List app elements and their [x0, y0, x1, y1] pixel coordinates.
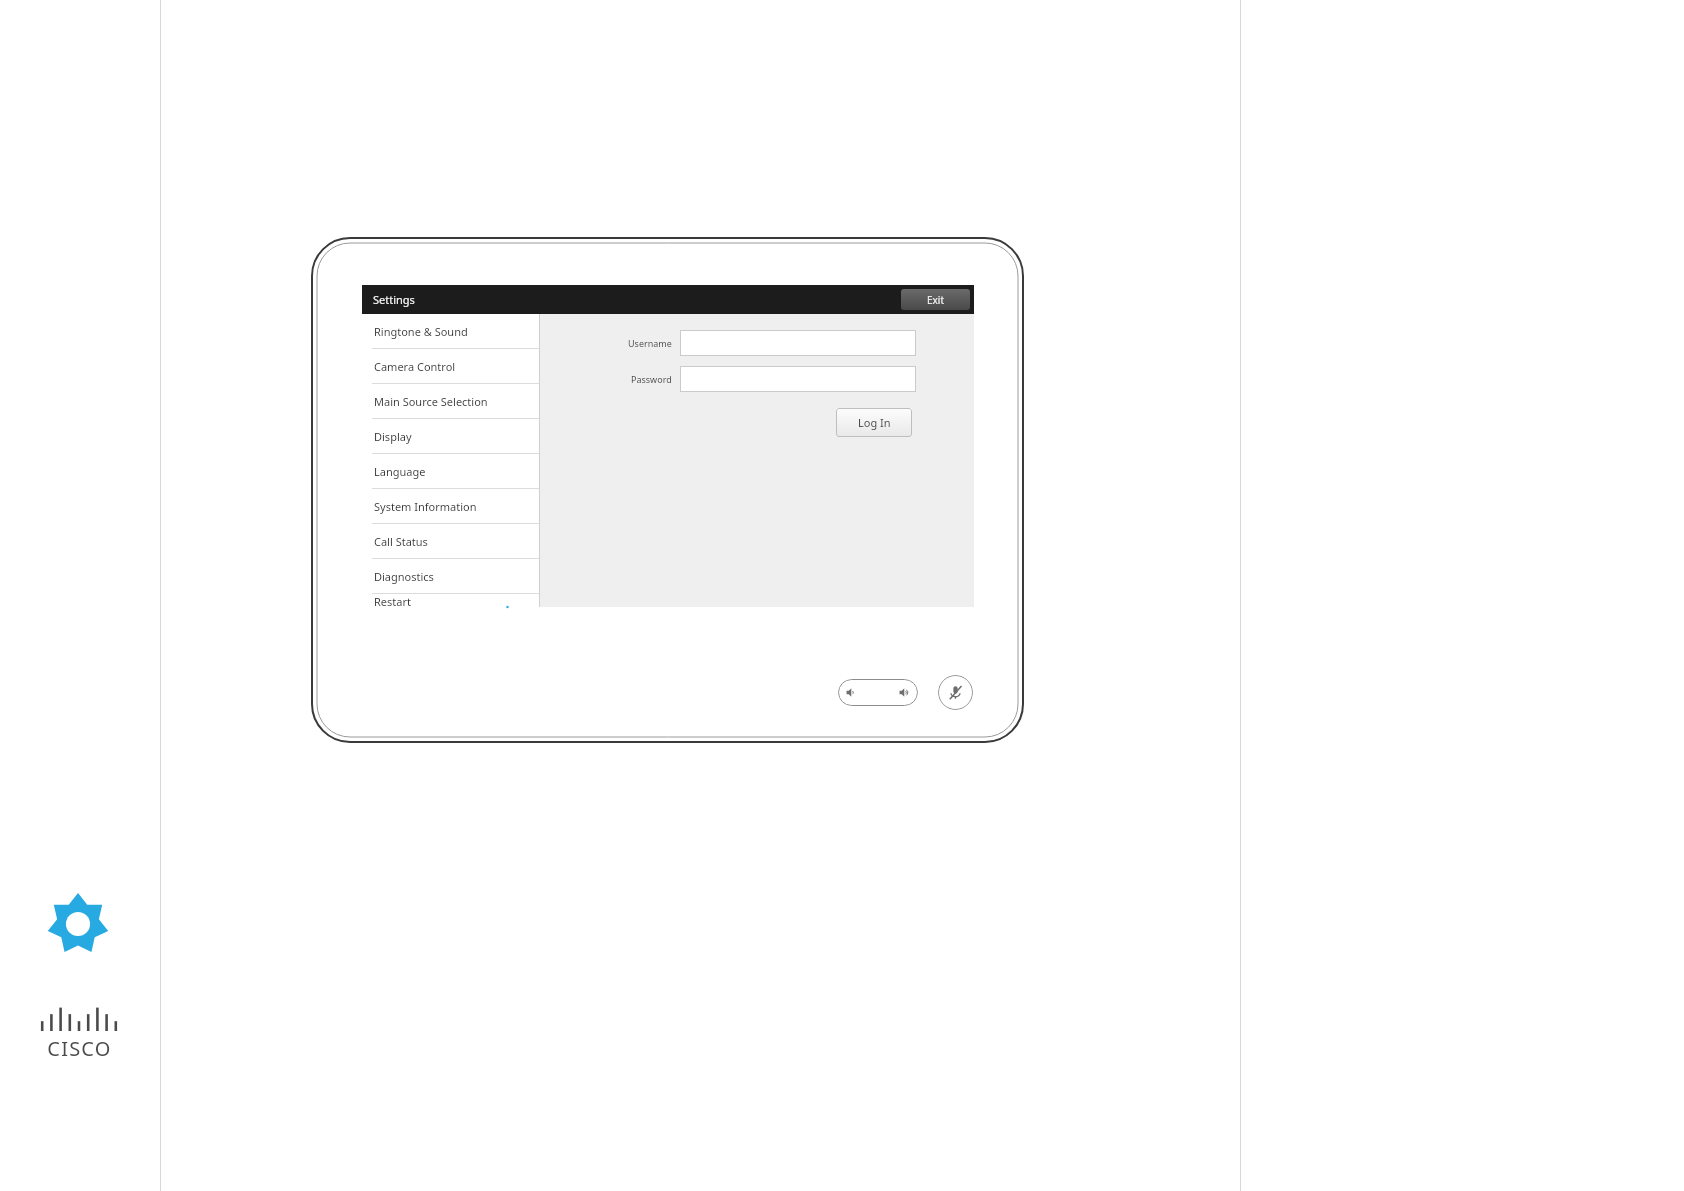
- staticText: Exit: [927, 293, 945, 307]
- button[interactable]: Display: [362, 419, 539, 454]
- button[interactable]: [680, 366, 916, 392]
- staticText: Main Source Selection: [374, 394, 488, 409]
- other: Cisco: [33, 1005, 125, 1031]
- staticText: System Information: [374, 499, 477, 514]
- button[interactable]: Log In: [836, 408, 912, 437]
- button[interactable]: Exit: [901, 289, 970, 310]
- button[interactable]: Ringtone & Sound: [362, 314, 539, 349]
- other: Settings: [47, 893, 109, 955]
- staticText: Diagnostics: [374, 569, 434, 584]
- staticText: Password: [631, 373, 672, 385]
- button[interactable]: Language: [362, 454, 539, 489]
- button[interactable]: [680, 330, 916, 356]
- button[interactable]: Main Source Selection: [362, 384, 539, 419]
- staticText: Log In: [858, 415, 891, 430]
- button[interactable]: System Information: [362, 489, 539, 524]
- staticText: Language: [374, 464, 426, 479]
- staticText: Restart: [374, 594, 411, 607]
- staticText: Ringtone & Sound: [374, 324, 468, 339]
- button[interactable]: Restart: [362, 594, 539, 607]
- button[interactable]: Mute microphone: [938, 675, 973, 710]
- staticText: Camera Control: [374, 359, 456, 374]
- button[interactable]: Call Status: [362, 524, 539, 559]
- staticText: Settings: [373, 292, 415, 307]
- button[interactable]: Volume: [838, 679, 918, 706]
- button[interactable]: Camera Control: [362, 349, 539, 384]
- button[interactable]: Diagnostics: [362, 559, 539, 594]
- staticText: CISCO: [47, 1035, 112, 1062]
- staticText: Call Status: [374, 534, 428, 549]
- staticText: Username: [628, 337, 672, 349]
- staticText: Display: [374, 429, 412, 444]
